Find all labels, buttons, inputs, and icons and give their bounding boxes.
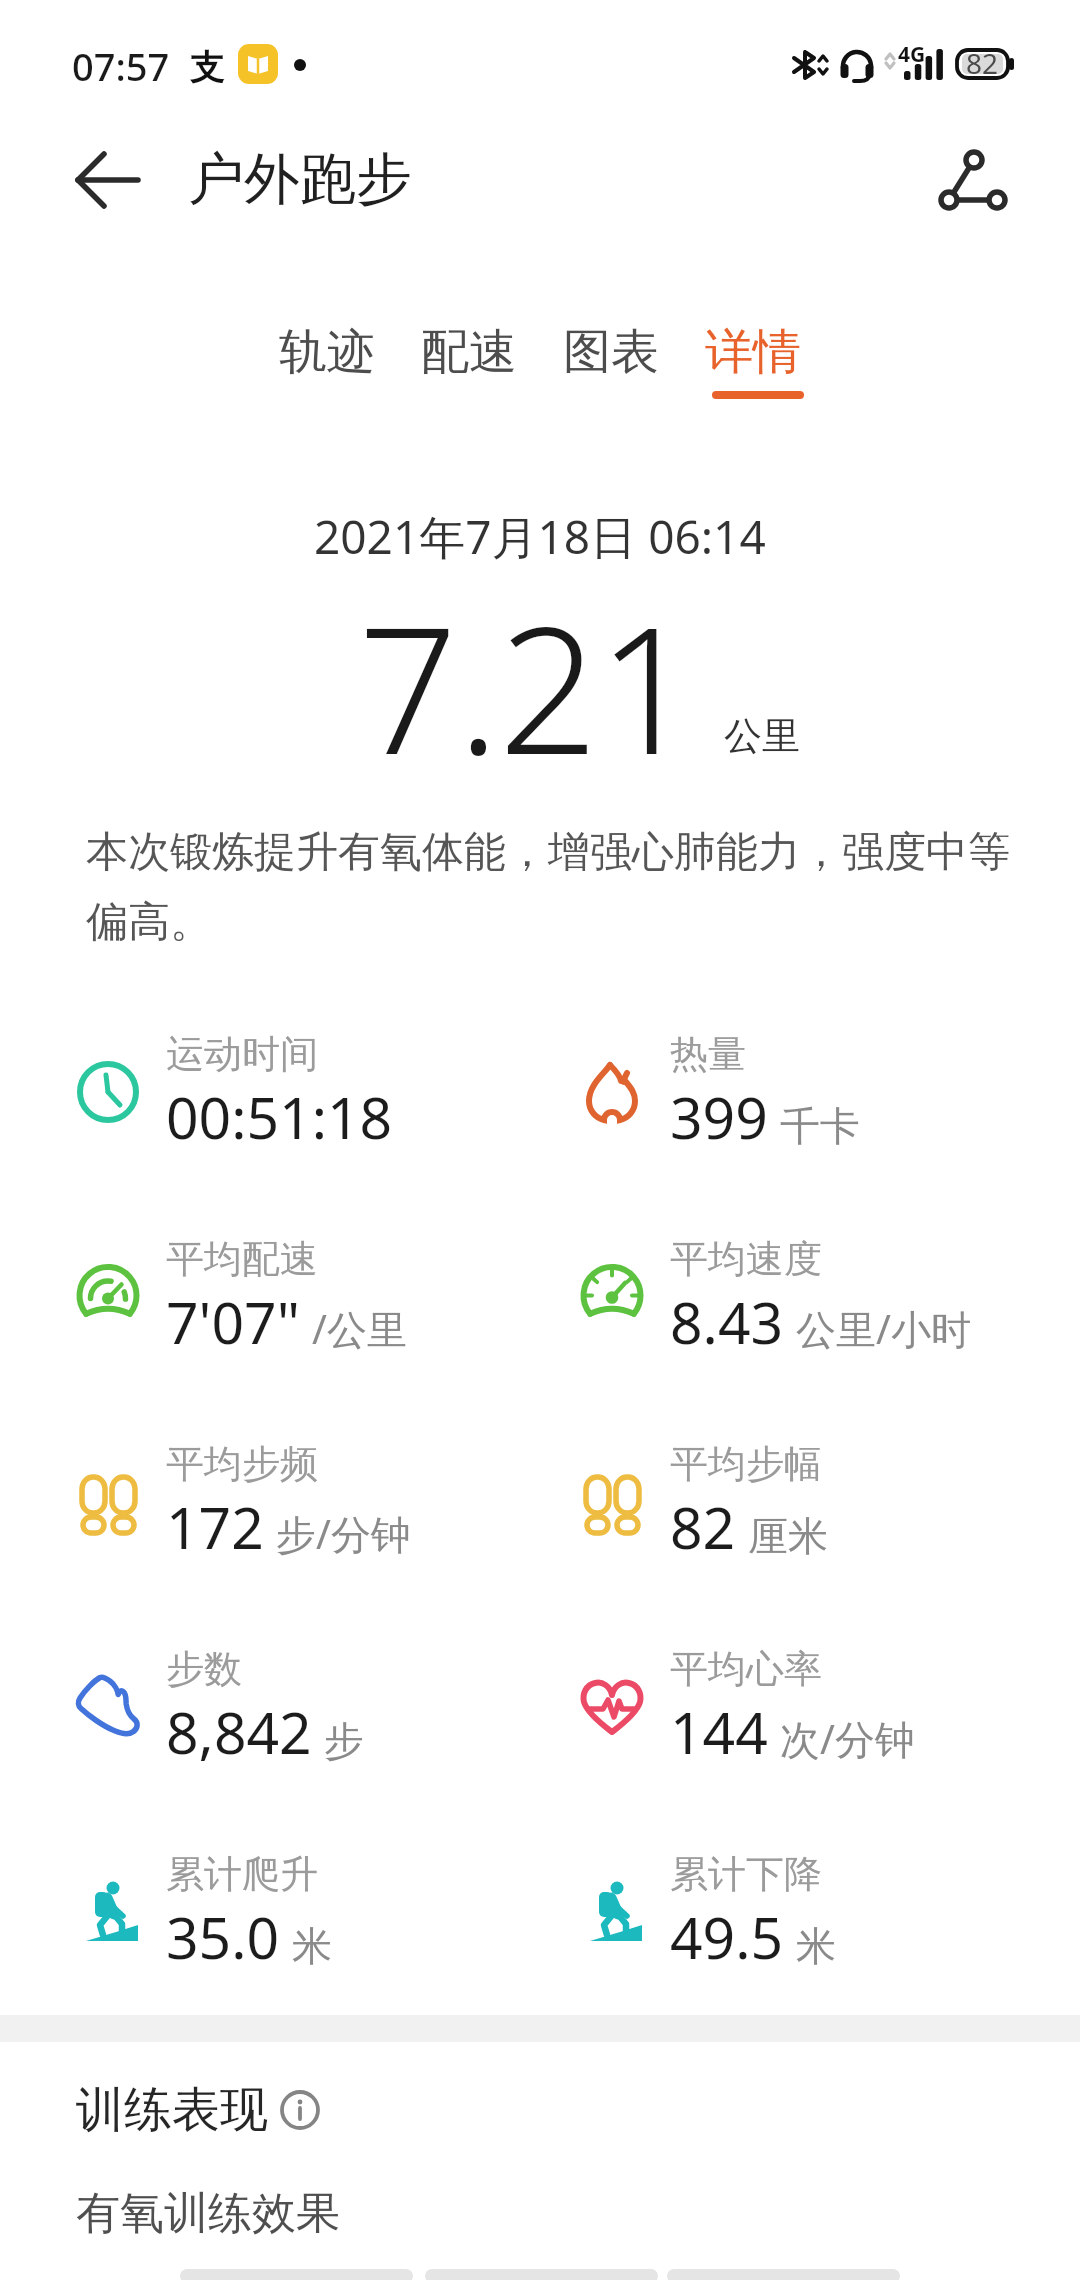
staticText: 7'07" bbox=[166, 1283, 300, 1361]
staticText: 7.21 bbox=[358, 567, 697, 805]
button[interactable]: 步数 bbox=[166, 1645, 364, 1771]
staticText: 图表 bbox=[563, 322, 659, 382]
staticText: 户外跑步 bbox=[188, 144, 412, 215]
button[interactable]: 累计下降 bbox=[670, 1850, 836, 1976]
staticText: 公里/小时 bbox=[796, 1301, 971, 1356]
staticText: 平均配速 bbox=[166, 1235, 318, 1283]
button[interactable]: 运动时间 bbox=[166, 1030, 393, 1156]
button[interactable]: 平均步幅 bbox=[670, 1440, 828, 1566]
staticText: 有氧训练效果 bbox=[76, 2186, 340, 2241]
staticText: 00:51:18 bbox=[166, 1078, 393, 1156]
button[interactable]: 累计爬升 bbox=[166, 1850, 332, 1976]
staticText: 热量 bbox=[670, 1030, 746, 1078]
button[interactable]: 平均配速 bbox=[166, 1235, 407, 1361]
staticText: 平均步幅 bbox=[670, 1440, 822, 1488]
button[interactable]: 训练表现 bbox=[76, 2080, 320, 2140]
staticText: 49.5 bbox=[670, 1898, 784, 1976]
staticText: 轨迹 bbox=[279, 322, 375, 382]
staticText: 千卡 bbox=[780, 1101, 860, 1151]
staticText: 步数 bbox=[166, 1645, 242, 1693]
staticText: 172 bbox=[166, 1488, 264, 1566]
staticText: 本次锻炼提升有氧体能，增强心肺能力，强度中等 偏高。 bbox=[86, 826, 1010, 949]
button[interactable]: 详情 bbox=[705, 322, 801, 382]
staticText: 米 bbox=[796, 1921, 836, 1971]
staticText: 2021年7月18日 06:14 bbox=[314, 505, 766, 568]
staticText: 82 bbox=[966, 44, 999, 82]
staticText: 07:57 bbox=[72, 40, 170, 92]
button[interactable]: 平均速度 bbox=[670, 1235, 971, 1361]
staticText: 支 bbox=[190, 46, 224, 89]
button[interactable]: 平均心率 bbox=[670, 1645, 915, 1771]
staticText: 步 bbox=[324, 1716, 364, 1766]
staticText: 公里 bbox=[724, 712, 800, 760]
staticText: /公里 bbox=[312, 1301, 407, 1356]
staticText: 144 bbox=[670, 1693, 768, 1771]
staticText: 厘米 bbox=[748, 1511, 828, 1561]
staticText: 米 bbox=[292, 1921, 332, 1971]
staticText: 平均速度 bbox=[670, 1235, 822, 1283]
button[interactable]: 热量 bbox=[670, 1030, 860, 1156]
staticText: 399 bbox=[670, 1078, 768, 1156]
button[interactable]: 轨迹 bbox=[279, 322, 375, 382]
button[interactable]: 图表 bbox=[563, 322, 659, 382]
button[interactable]: 配速 bbox=[421, 322, 517, 382]
staticText: 8.43 bbox=[670, 1283, 784, 1361]
staticText: 平均步频 bbox=[166, 1440, 318, 1488]
staticText: 累计下降 bbox=[670, 1850, 822, 1898]
button[interactable] bbox=[925, 135, 1015, 225]
button[interactable] bbox=[64, 144, 152, 232]
staticText: 35.0 bbox=[166, 1898, 280, 1976]
staticText: 配速 bbox=[421, 322, 517, 382]
staticText: 8,842 bbox=[166, 1693, 312, 1771]
staticText: 累计爬升 bbox=[166, 1850, 318, 1898]
staticText: 82 bbox=[670, 1488, 736, 1566]
staticText: 4G bbox=[898, 40, 926, 69]
staticText: 步/分钟 bbox=[276, 1506, 411, 1561]
staticText: 详情 bbox=[705, 322, 801, 382]
staticText: 次/分钟 bbox=[780, 1711, 915, 1766]
staticText: 训练表现 bbox=[76, 2080, 268, 2140]
staticText: 平均心率 bbox=[670, 1645, 822, 1693]
button[interactable]: 平均步频 bbox=[166, 1440, 411, 1566]
staticText: 运动时间 bbox=[166, 1030, 318, 1078]
